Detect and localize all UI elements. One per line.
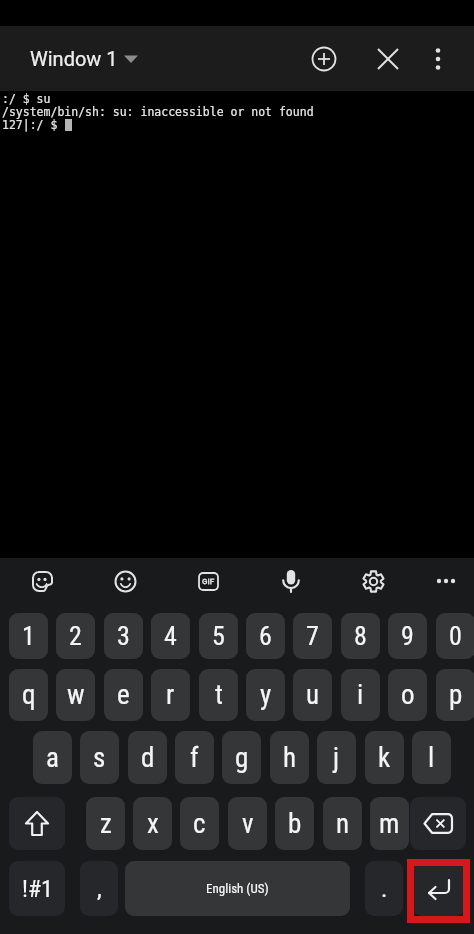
button[interactable]: 4 — [151, 613, 190, 659]
button[interactable]: l — [412, 731, 451, 784]
button[interactable] — [370, 41, 406, 77]
button[interactable]: a — [33, 731, 72, 784]
button[interactable] — [426, 561, 466, 601]
staticText: f — [190, 742, 199, 774]
button[interactable]: 7 — [293, 613, 332, 659]
staticText: !#1 — [22, 875, 53, 903]
staticText: g — [235, 742, 249, 774]
button[interactable]: . — [365, 861, 403, 916]
button[interactable]: q — [9, 669, 48, 721]
staticText: i — [357, 679, 364, 711]
staticText: 1 — [22, 621, 35, 651]
staticText: b — [288, 808, 302, 840]
staticText: l — [428, 742, 435, 774]
staticText: z — [100, 808, 112, 840]
staticText: 9 — [401, 621, 414, 651]
button[interactable]: 3 — [104, 613, 143, 659]
button[interactable]: e — [104, 669, 143, 721]
staticText: m — [379, 808, 400, 840]
staticText: t — [215, 679, 223, 711]
button[interactable]: z — [86, 797, 125, 850]
staticText: 3 — [117, 621, 130, 651]
button[interactable]: d — [128, 731, 167, 784]
button[interactable] — [410, 797, 466, 850]
staticText: j — [333, 742, 340, 774]
staticText: 6 — [259, 621, 272, 651]
staticText: GIF — [202, 577, 215, 586]
button[interactable]: o — [388, 669, 427, 721]
staticText: . — [381, 875, 388, 903]
staticText: c — [193, 808, 206, 840]
staticText: d — [141, 742, 155, 774]
button[interactable]: m — [370, 797, 409, 850]
staticText: u — [306, 679, 320, 711]
button[interactable]: 1 — [9, 613, 48, 659]
button[interactable]: 0 — [436, 613, 474, 659]
staticText: x — [147, 808, 159, 840]
staticText: e — [117, 679, 130, 711]
staticText: 2 — [69, 621, 82, 651]
staticText: r — [166, 679, 175, 711]
staticText: a — [46, 742, 59, 774]
button[interactable]: g — [222, 731, 261, 784]
button[interactable] — [22, 561, 62, 601]
button[interactable]: 2 — [56, 613, 95, 659]
button[interactable]: 9 — [388, 613, 427, 659]
staticText: , — [97, 875, 102, 903]
button[interactable]: v — [228, 797, 267, 850]
staticText: 5 — [212, 621, 225, 651]
staticText: k — [378, 742, 391, 774]
staticText: 0 — [449, 621, 462, 651]
button[interactable]: b — [275, 797, 314, 850]
button[interactable]: English (US) — [125, 861, 350, 916]
button[interactable]: GIF — [188, 561, 228, 601]
button[interactable] — [9, 797, 65, 850]
button[interactable]: t — [199, 669, 238, 721]
staticText: English (US) — [206, 881, 269, 896]
button[interactable]: u — [293, 669, 332, 721]
staticText: 7 — [306, 621, 319, 651]
button[interactable] — [306, 41, 342, 77]
button[interactable]: s — [80, 731, 119, 784]
staticText: o — [401, 679, 415, 711]
button[interactable] — [105, 561, 145, 601]
button[interactable]: 8 — [341, 613, 380, 659]
button[interactable]: !#1 — [9, 861, 65, 916]
button[interactable]: 5 — [199, 613, 238, 659]
button[interactable] — [271, 561, 311, 601]
staticText: :/ $ su — [2, 92, 51, 105]
button[interactable]: h — [270, 731, 309, 784]
button[interactable]: i — [341, 669, 380, 721]
staticText: 127|:/ $ — [2, 118, 65, 131]
button[interactable] — [413, 861, 465, 916]
staticText: n — [336, 808, 350, 840]
button[interactable]: y — [246, 669, 285, 721]
staticText: 4 — [164, 621, 177, 651]
staticText: q — [22, 679, 36, 711]
button[interactable]: f — [175, 731, 214, 784]
staticText: 8 — [354, 621, 367, 651]
staticText: p — [449, 679, 463, 711]
button[interactable] — [420, 41, 456, 77]
button[interactable]: n — [323, 797, 362, 850]
button[interactable] — [353, 561, 393, 601]
staticText: /system/bin/sh: su: inaccessible or not … — [2, 105, 314, 118]
button[interactable]: , — [80, 861, 118, 916]
button[interactable]: Window 1 — [30, 47, 138, 70]
staticText: w — [67, 679, 85, 711]
button[interactable]: j — [317, 731, 356, 784]
button[interactable]: k — [365, 731, 404, 784]
button[interactable]: x — [133, 797, 172, 850]
button[interactable]: w — [56, 669, 95, 721]
staticText: v — [242, 808, 254, 840]
button[interactable]: p — [436, 669, 474, 721]
staticText: h — [283, 742, 297, 774]
staticText: s — [93, 742, 106, 774]
staticText: Window 1 — [30, 47, 118, 70]
button[interactable]: r — [151, 669, 190, 721]
button[interactable]: 6 — [246, 613, 285, 659]
button[interactable]: c — [180, 797, 219, 850]
staticText: y — [260, 679, 272, 711]
